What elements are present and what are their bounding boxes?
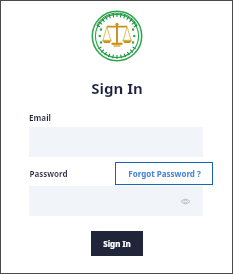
button[interactable]: Show password (179, 195, 191, 207)
staticText: Email (29, 112, 51, 123)
button[interactable]: Sign In (91, 231, 143, 256)
button[interactable]: Show password (29, 186, 203, 216)
staticText: Sign In (91, 78, 143, 98)
button[interactable]: Forgot Password ? (115, 162, 213, 185)
staticText: Sign In (103, 238, 131, 249)
staticText: Forgot Password ? (128, 168, 201, 179)
staticText: Password (29, 168, 68, 179)
